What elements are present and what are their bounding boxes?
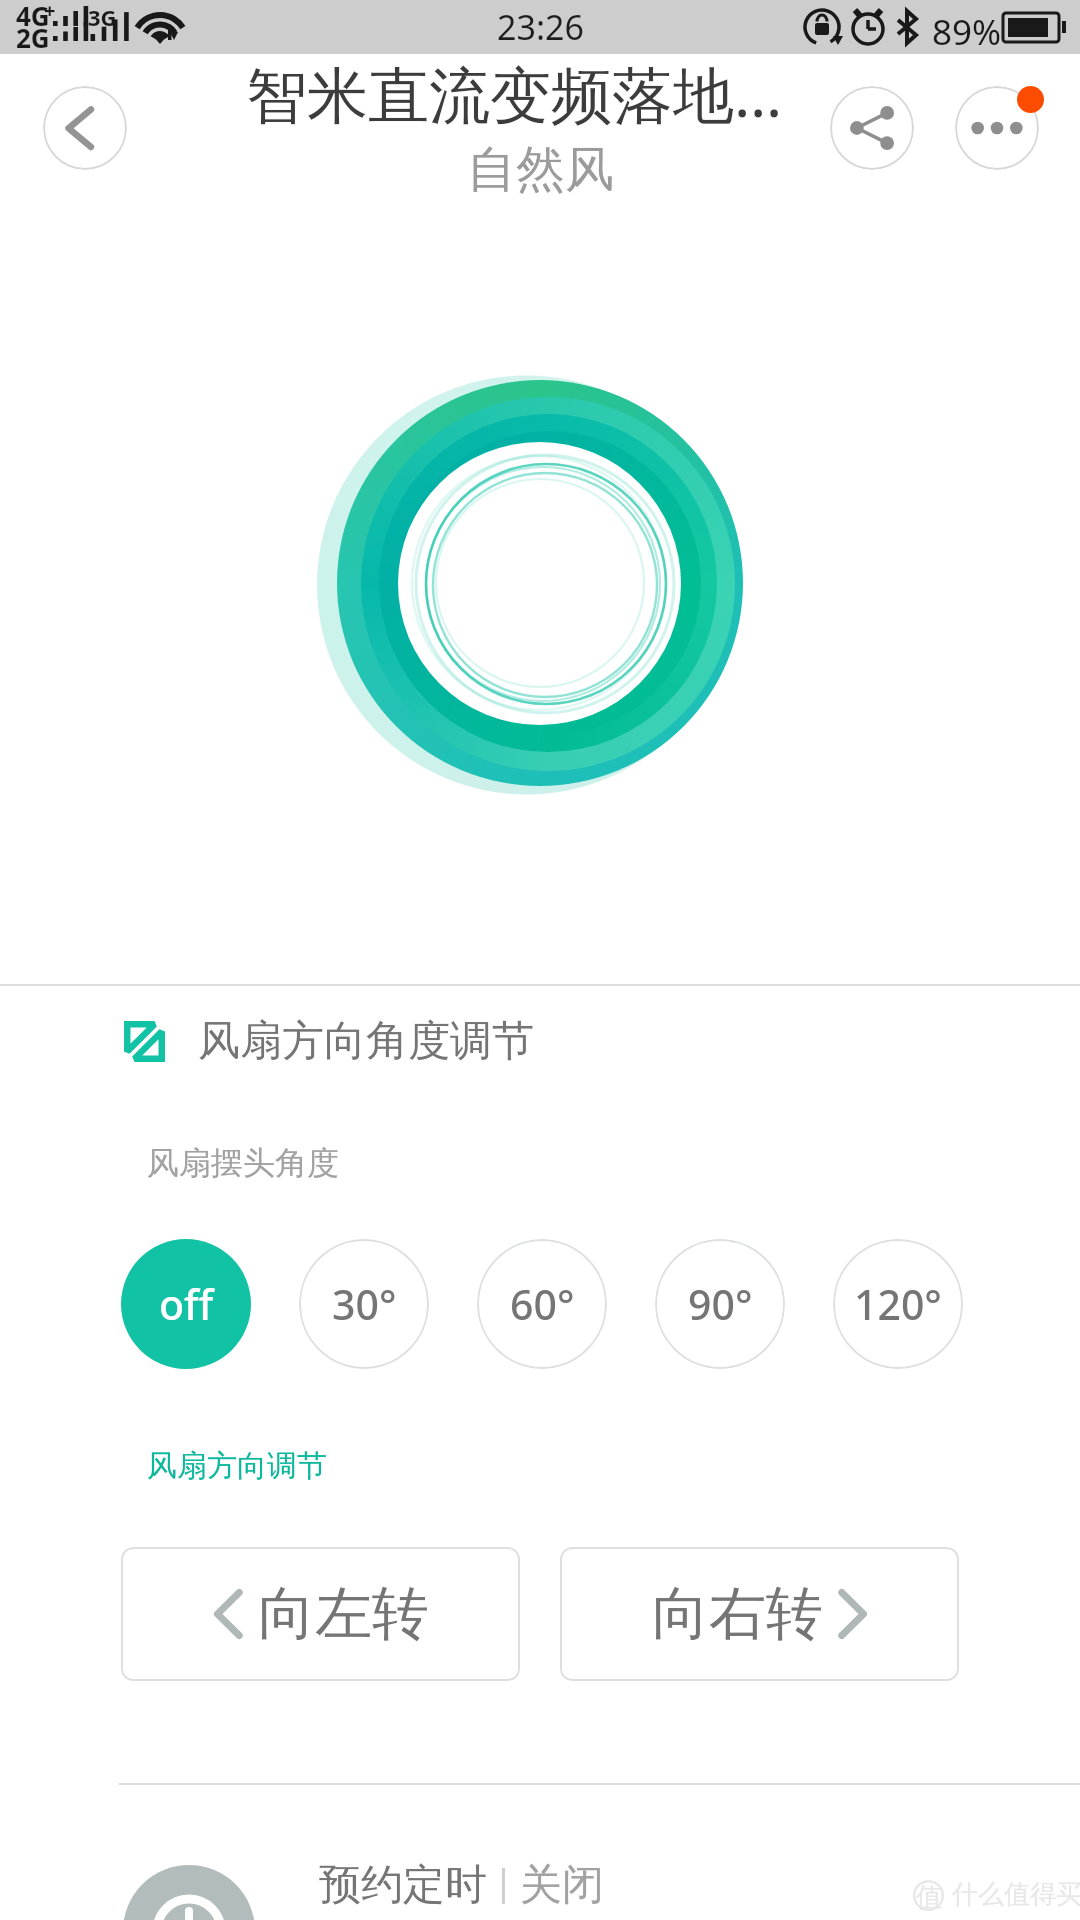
staticText: 风扇方向角度调节 <box>198 1015 534 1068</box>
button[interactable]: More options <box>955 86 1039 170</box>
staticText: 89% <box>932 8 1002 56</box>
staticText: 23:26 <box>497 4 584 50</box>
staticText: 向左转 <box>258 1578 429 1650</box>
staticText: + <box>44 0 56 24</box>
button[interactable]: Share <box>830 86 914 170</box>
staticText: 90° <box>688 1276 753 1332</box>
button[interactable]: 向右转 <box>560 1547 959 1681</box>
staticText: 60° <box>510 1276 575 1332</box>
button[interactable]: 60° <box>477 1239 607 1369</box>
staticText: 风扇方向调节 <box>147 1447 327 1485</box>
staticText: off <box>159 1276 214 1332</box>
button[interactable]: Back <box>43 86 127 170</box>
staticText: 值 <box>916 1881 942 1914</box>
staticText: 30° <box>332 1276 397 1332</box>
staticText: 预约定时 <box>319 1859 487 1912</box>
staticText: 4G <box>16 0 50 33</box>
staticText: 风扇摆头角度 <box>147 1143 339 1183</box>
staticText: 向右转 <box>652 1578 823 1650</box>
staticText: 什么值得买 <box>952 1878 1080 1911</box>
staticText: 自然风 <box>467 139 614 201</box>
button[interactable]: 向左转 <box>121 1547 520 1681</box>
button[interactable]: 120° <box>833 1239 963 1369</box>
button[interactable]: 30° <box>299 1239 429 1369</box>
staticText: 2G <box>16 20 50 55</box>
button[interactable]: 90° <box>655 1239 785 1369</box>
button[interactable]: off <box>121 1239 251 1369</box>
staticText: 智米直流变频落地… <box>246 52 783 135</box>
staticText: 3G <box>88 2 117 32</box>
staticText: 关闭 <box>520 1859 604 1912</box>
staticText: 120° <box>854 1276 942 1332</box>
